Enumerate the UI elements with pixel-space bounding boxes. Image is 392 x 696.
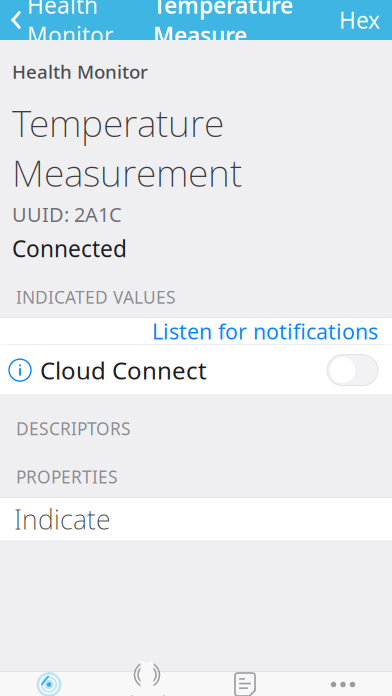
staticText: Health Monitor: [27, 0, 113, 50]
staticText: DESCRIPTORS: [16, 417, 131, 440]
button[interactable]: Cloud Connect toggle: [327, 355, 378, 386]
staticText: Temperature Measurement: [12, 98, 242, 197]
staticText: Virtual Devices: [121, 691, 173, 696]
staticText: Listen for notifications: [152, 317, 378, 345]
staticText: Health Monitor: [12, 59, 148, 84]
button[interactable]: Virtual Devices: [98, 672, 196, 696]
button[interactable]: More: [294, 672, 392, 696]
staticText: Indicate: [14, 501, 111, 537]
button[interactable]: Hex: [327, 0, 392, 40]
button[interactable]: Info about Cloud Connect: [0, 345, 40, 395]
button[interactable]: Log: [196, 672, 294, 696]
staticText: Temperature Measure...: [153, 0, 293, 50]
staticText: Hex: [339, 5, 380, 35]
button[interactable]: Listen for notifications: [0, 318, 392, 345]
button[interactable]: Health Monitor: [0, 0, 119, 40]
staticText: INDICATED VALUES: [16, 286, 176, 309]
staticText: Connected: [12, 233, 127, 264]
button[interactable]: Peripherals: [0, 672, 98, 696]
staticText: PROPERTIES: [16, 465, 118, 488]
staticText: Cloud Connect: [40, 354, 207, 386]
staticText: UUID: 2A1C: [12, 201, 122, 227]
